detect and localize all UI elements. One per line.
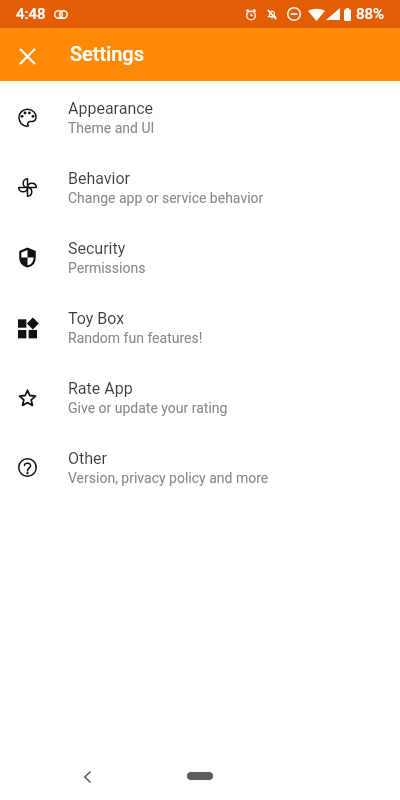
- staticText: Security: [68, 239, 126, 258]
- staticText: Permissions: [68, 260, 146, 276]
- staticText: Random fun features!: [68, 330, 203, 346]
- button[interactable]: Behavior: [0, 152, 400, 222]
- staticText: Version, privacy policy and more: [68, 470, 269, 486]
- staticText: Give or update your rating: [68, 400, 228, 416]
- staticText: Settings: [70, 42, 145, 65]
- button[interactable]: Back: [70, 760, 104, 794]
- button[interactable]: Security: [0, 222, 400, 292]
- button[interactable]: Toy Box: [0, 292, 400, 362]
- staticText: 4:48: [16, 5, 46, 23]
- staticText: Other: [68, 449, 107, 468]
- button[interactable]: Home: [187, 772, 213, 780]
- staticText: Theme and UI: [68, 120, 155, 136]
- button[interactable]: Other: [0, 432, 400, 502]
- staticText: 88%: [356, 5, 385, 23]
- staticText: Appearance: [68, 99, 154, 118]
- staticText: Toy Box: [68, 309, 125, 328]
- button[interactable]: Appearance: [0, 82, 400, 152]
- staticText: Change app or service behavior: [68, 190, 264, 206]
- staticText: Behavior: [68, 169, 131, 188]
- button[interactable]: Rate App: [0, 362, 400, 432]
- button[interactable]: Close: [7, 35, 47, 75]
- staticText: Rate App: [68, 379, 133, 398]
